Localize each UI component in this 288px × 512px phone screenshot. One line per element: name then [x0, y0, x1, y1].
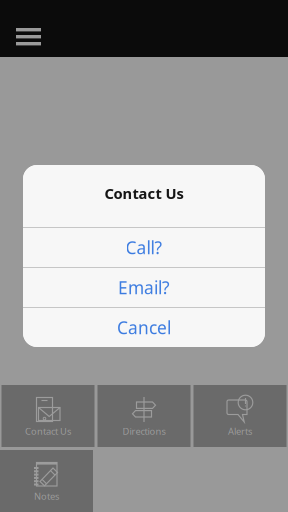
button[interactable]: Menu — [0, 0, 57, 57]
staticText: Email? — [118, 276, 170, 299]
button[interactable]: Call? — [23, 228, 265, 267]
staticText: Notes — [34, 490, 59, 502]
button[interactable]: Directions — [97, 385, 190, 447]
button[interactable]: Cancel — [23, 308, 265, 347]
button[interactable]: Email? — [23, 268, 265, 307]
staticText: Cancel — [117, 316, 171, 339]
staticText: Contact Us — [25, 425, 71, 437]
button[interactable]: Contact Us — [1, 385, 94, 447]
staticText: Call? — [125, 236, 162, 259]
button[interactable]: Notes — [0, 450, 93, 512]
button[interactable]: Alerts — [193, 385, 286, 447]
staticText: Directions — [122, 425, 165, 437]
staticText: Alerts — [228, 425, 252, 437]
staticText: Contact Us — [104, 183, 183, 203]
